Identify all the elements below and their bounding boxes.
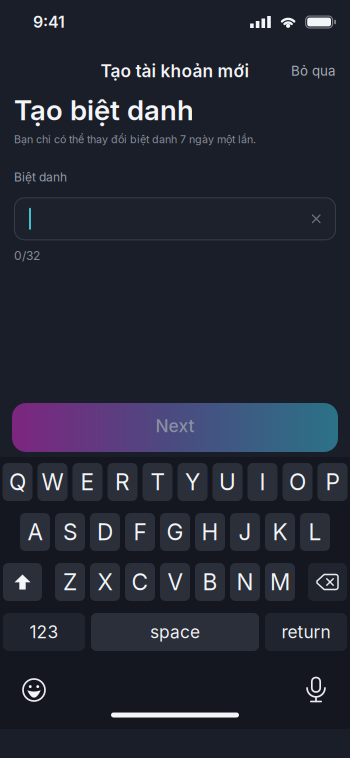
staticText: Z [63, 568, 77, 596]
button[interactable]: S [55, 513, 85, 551]
staticText: P [325, 468, 339, 496]
staticText: Next [155, 415, 194, 436]
button[interactable]: D [90, 513, 120, 551]
staticText: G [166, 518, 183, 546]
button[interactable]: Bỏ qua [291, 63, 335, 79]
staticText: X [97, 568, 112, 596]
staticText: C [131, 568, 148, 596]
staticText: O [289, 468, 306, 496]
button[interactable]: F [125, 513, 155, 551]
button[interactable] [14, 197, 336, 240]
button[interactable]: V [160, 563, 190, 601]
staticText: Tạo tài khoản mới [100, 60, 249, 81]
staticText: F [133, 518, 146, 546]
staticText: Y [185, 468, 200, 496]
button[interactable]: N [230, 563, 260, 601]
staticText: U [219, 468, 236, 496]
button[interactable]: T [142, 463, 172, 501]
button[interactable] [312, 215, 336, 223]
button[interactable]: Y [177, 463, 207, 501]
button[interactable] [296, 671, 336, 709]
staticText: D [97, 518, 113, 546]
staticText: L [308, 518, 321, 546]
button[interactable]: O [282, 463, 312, 501]
button[interactable]: U [212, 463, 242, 501]
staticText: 123 [29, 621, 58, 642]
button[interactable]: Q [2, 463, 32, 501]
staticText: W [41, 468, 63, 496]
staticText: R [115, 468, 130, 496]
button[interactable]: E [72, 463, 102, 501]
button[interactable]: X [90, 563, 120, 601]
staticText: T [150, 468, 164, 496]
button[interactable]: C [125, 563, 155, 601]
staticText: M [270, 568, 290, 596]
staticText: space [150, 621, 200, 642]
button[interactable]: W [37, 463, 67, 501]
button[interactable] [3, 563, 42, 601]
button[interactable]: L [300, 513, 330, 551]
staticText: Biệt danh [14, 170, 67, 184]
staticText: N [236, 568, 253, 596]
button[interactable]: H [195, 513, 225, 551]
staticText: 9:41 [33, 12, 65, 32]
button[interactable]: A [20, 513, 50, 551]
staticText: Bỏ qua [291, 63, 335, 79]
button[interactable]: 123 [3, 613, 85, 651]
button[interactable]: Z [55, 563, 85, 601]
staticText: Bạn chỉ có thể thay đổi biệt danh 7 ngày… [14, 133, 256, 146]
staticText: B [202, 568, 217, 596]
button[interactable]: return [265, 613, 347, 651]
button[interactable]: I [247, 463, 277, 501]
button[interactable] [14, 671, 54, 709]
button[interactable]: K [265, 513, 295, 551]
staticText: J [238, 518, 251, 546]
button[interactable]: P [317, 463, 347, 501]
button[interactable]: G [160, 513, 190, 551]
staticText: S [63, 518, 77, 546]
button[interactable]: B [195, 563, 225, 601]
staticText: A [27, 518, 42, 546]
button[interactable]: Next [12, 403, 338, 452]
staticText: 0/32 [14, 248, 40, 263]
button[interactable]: M [265, 563, 295, 601]
button[interactable] [308, 563, 347, 601]
staticText: Q [9, 468, 26, 496]
staticText: Tạo biệt danh [14, 93, 194, 127]
staticText: return [281, 621, 330, 642]
button[interactable]: J [230, 513, 260, 551]
staticText: I [259, 468, 265, 496]
staticText: K [272, 518, 287, 546]
staticText: V [167, 568, 182, 596]
staticText: H [201, 518, 218, 546]
button[interactable]: space [91, 613, 259, 651]
staticText: E [80, 468, 94, 496]
button[interactable]: R [107, 463, 137, 501]
